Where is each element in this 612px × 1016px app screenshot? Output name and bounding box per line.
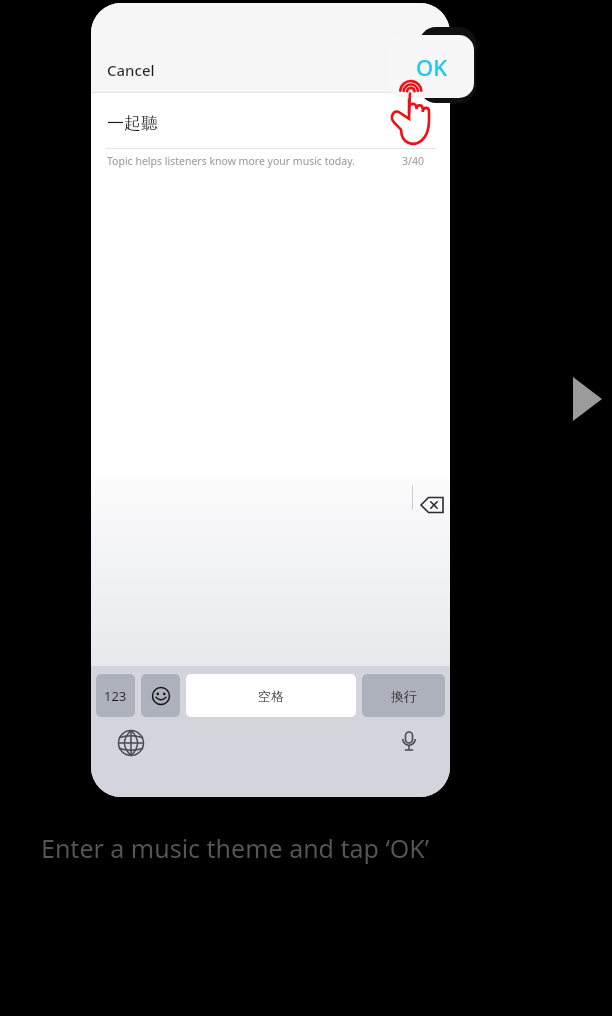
button[interactable]: 空格 <box>186 674 356 717</box>
staticText: 一起聽 <box>107 113 158 134</box>
button[interactable]: Cancel <box>97 54 165 86</box>
staticText: OK <box>416 52 448 82</box>
staticText: Enter a music theme and tap ‘OK’ <box>41 831 430 865</box>
button[interactable]: 123 <box>96 674 135 717</box>
button[interactable]: Emoji <box>141 674 180 717</box>
button[interactable]: Switch keyboard <box>116 728 146 758</box>
button[interactable]: 換行 <box>362 674 445 717</box>
staticText: 3/40 <box>402 154 424 168</box>
staticText: Topic helps listeners know more your mus… <box>107 154 355 168</box>
button[interactable]: OK <box>389 35 474 98</box>
staticText: Cancel <box>107 60 155 80</box>
button[interactable]: Delete <box>415 491 449 519</box>
staticText: 123 <box>104 687 127 705</box>
button[interactable]: Next <box>571 374 604 424</box>
button[interactable]: Voice input <box>394 728 424 758</box>
staticText: 空格 <box>258 688 284 704</box>
staticText: 換行 <box>391 688 417 704</box>
